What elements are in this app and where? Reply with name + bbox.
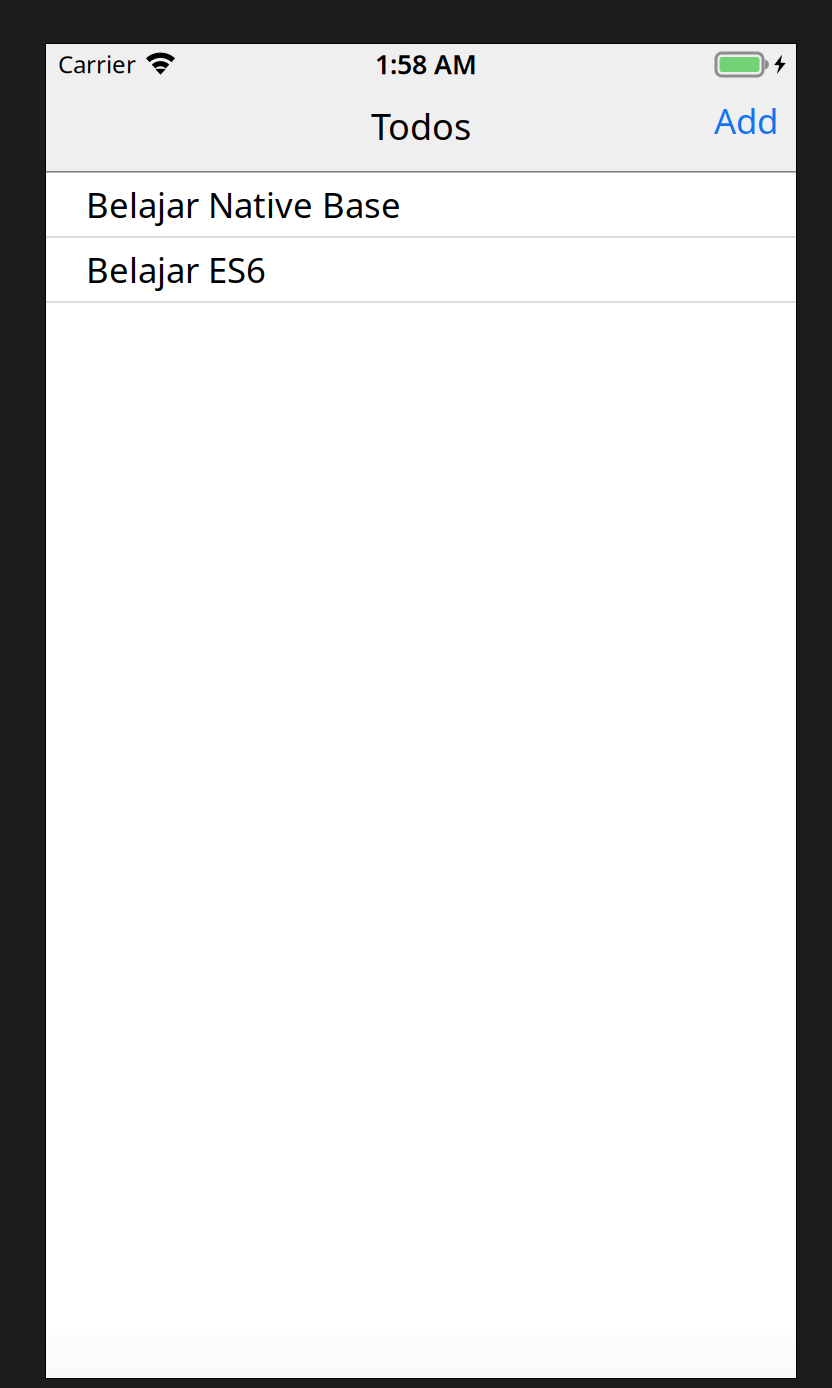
staticText: 1:58 AM [375, 46, 477, 82]
staticText: Add [714, 97, 778, 143]
staticText: Belajar Native Base [86, 181, 401, 227]
button[interactable]: Add [693, 84, 796, 157]
button[interactable]: Belajar Native Base [46, 173, 796, 238]
button[interactable]: Belajar ES6 [46, 238, 796, 303]
staticText: Belajar ES6 [86, 246, 266, 292]
staticText: Carrier [58, 48, 136, 80]
staticText: Todos [371, 102, 471, 150]
